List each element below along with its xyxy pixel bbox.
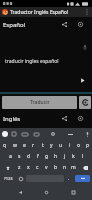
staticText: s xyxy=(18,153,21,160)
staticText: k xyxy=(72,153,75,160)
button[interactable]: c xyxy=(33,162,42,173)
staticText: r xyxy=(32,142,35,149)
staticText: v xyxy=(45,164,48,171)
button[interactable]: x xyxy=(24,162,33,173)
button[interactable]: j xyxy=(60,151,69,162)
staticText: Traducir xyxy=(30,99,50,106)
button[interactable]: v xyxy=(42,162,51,173)
staticText: Traductor Inglés Español xyxy=(10,9,69,16)
button[interactable]: Copy xyxy=(74,112,86,124)
button[interactable]: More options xyxy=(83,7,91,17)
staticText: n xyxy=(63,164,67,171)
button[interactable]: Back xyxy=(13,185,27,199)
button[interactable]: Backspace xyxy=(78,162,92,173)
staticText: c xyxy=(36,164,39,171)
staticText: e xyxy=(23,142,26,149)
button[interactable]: g xyxy=(42,151,51,162)
staticText: l xyxy=(82,153,84,160)
button[interactable]: s xyxy=(15,151,24,162)
staticText: a xyxy=(9,153,12,160)
button[interactable]: y xyxy=(47,140,56,151)
staticText: m xyxy=(71,164,76,171)
button[interactable]: p xyxy=(83,140,92,151)
button[interactable]: t xyxy=(38,140,47,151)
button[interactable]: b xyxy=(51,162,60,173)
button[interactable]: Copy xyxy=(74,18,86,30)
button[interactable]: z xyxy=(15,162,24,173)
staticText: y xyxy=(50,142,53,149)
staticText: j xyxy=(64,153,66,160)
staticText: b xyxy=(54,164,58,171)
button[interactable]: f xyxy=(33,151,42,162)
staticText: g xyxy=(45,153,49,160)
staticText: Inglés xyxy=(3,115,21,123)
staticText: u xyxy=(59,142,63,149)
staticText: i xyxy=(69,142,71,149)
staticText: Español xyxy=(3,21,26,29)
button[interactable]: n xyxy=(60,162,69,173)
button[interactable]: Share xyxy=(58,112,70,124)
button[interactable]: m xyxy=(69,162,78,173)
button[interactable]: u xyxy=(56,140,65,151)
button[interactable]: i xyxy=(65,140,74,151)
staticText: w xyxy=(13,142,17,149)
staticText: ?123 xyxy=(4,176,13,181)
button[interactable]: k xyxy=(69,151,78,162)
button[interactable]: ?123 xyxy=(0,173,16,184)
button[interactable]: e xyxy=(20,140,29,151)
button[interactable]: h xyxy=(51,151,60,162)
button[interactable]: w xyxy=(10,140,20,151)
button[interactable]: a xyxy=(6,151,15,162)
button[interactable]: . xyxy=(65,173,73,184)
button[interactable]: Shift xyxy=(0,162,15,173)
staticText: h xyxy=(54,153,58,160)
button[interactable]: Recents xyxy=(66,185,80,199)
staticText: . xyxy=(68,175,70,182)
button[interactable]: d xyxy=(24,151,33,162)
button[interactable]: Home xyxy=(39,185,53,199)
button[interactable]: Listen xyxy=(78,76,87,85)
button[interactable]: Emoji xyxy=(16,173,25,184)
button[interactable]: o xyxy=(74,140,83,151)
button[interactable]: r xyxy=(29,140,38,151)
button[interactable]: Swap languages xyxy=(79,96,91,109)
staticText: traducir ingles español xyxy=(5,58,59,65)
button[interactable]: Share xyxy=(58,18,70,30)
staticText: f xyxy=(37,153,39,160)
staticText: x xyxy=(27,164,30,171)
staticText: p xyxy=(86,142,90,149)
button[interactable]: q xyxy=(0,140,10,151)
staticText: o xyxy=(77,142,81,149)
staticText: q xyxy=(3,142,7,149)
staticText: d xyxy=(27,153,31,160)
staticText: z xyxy=(18,164,21,171)
button[interactable]: Traducir xyxy=(2,96,77,109)
button[interactable]: Voice input xyxy=(80,42,90,52)
button[interactable]: Enter xyxy=(75,175,90,182)
staticText: t xyxy=(42,142,44,149)
button[interactable]: l xyxy=(78,151,87,162)
